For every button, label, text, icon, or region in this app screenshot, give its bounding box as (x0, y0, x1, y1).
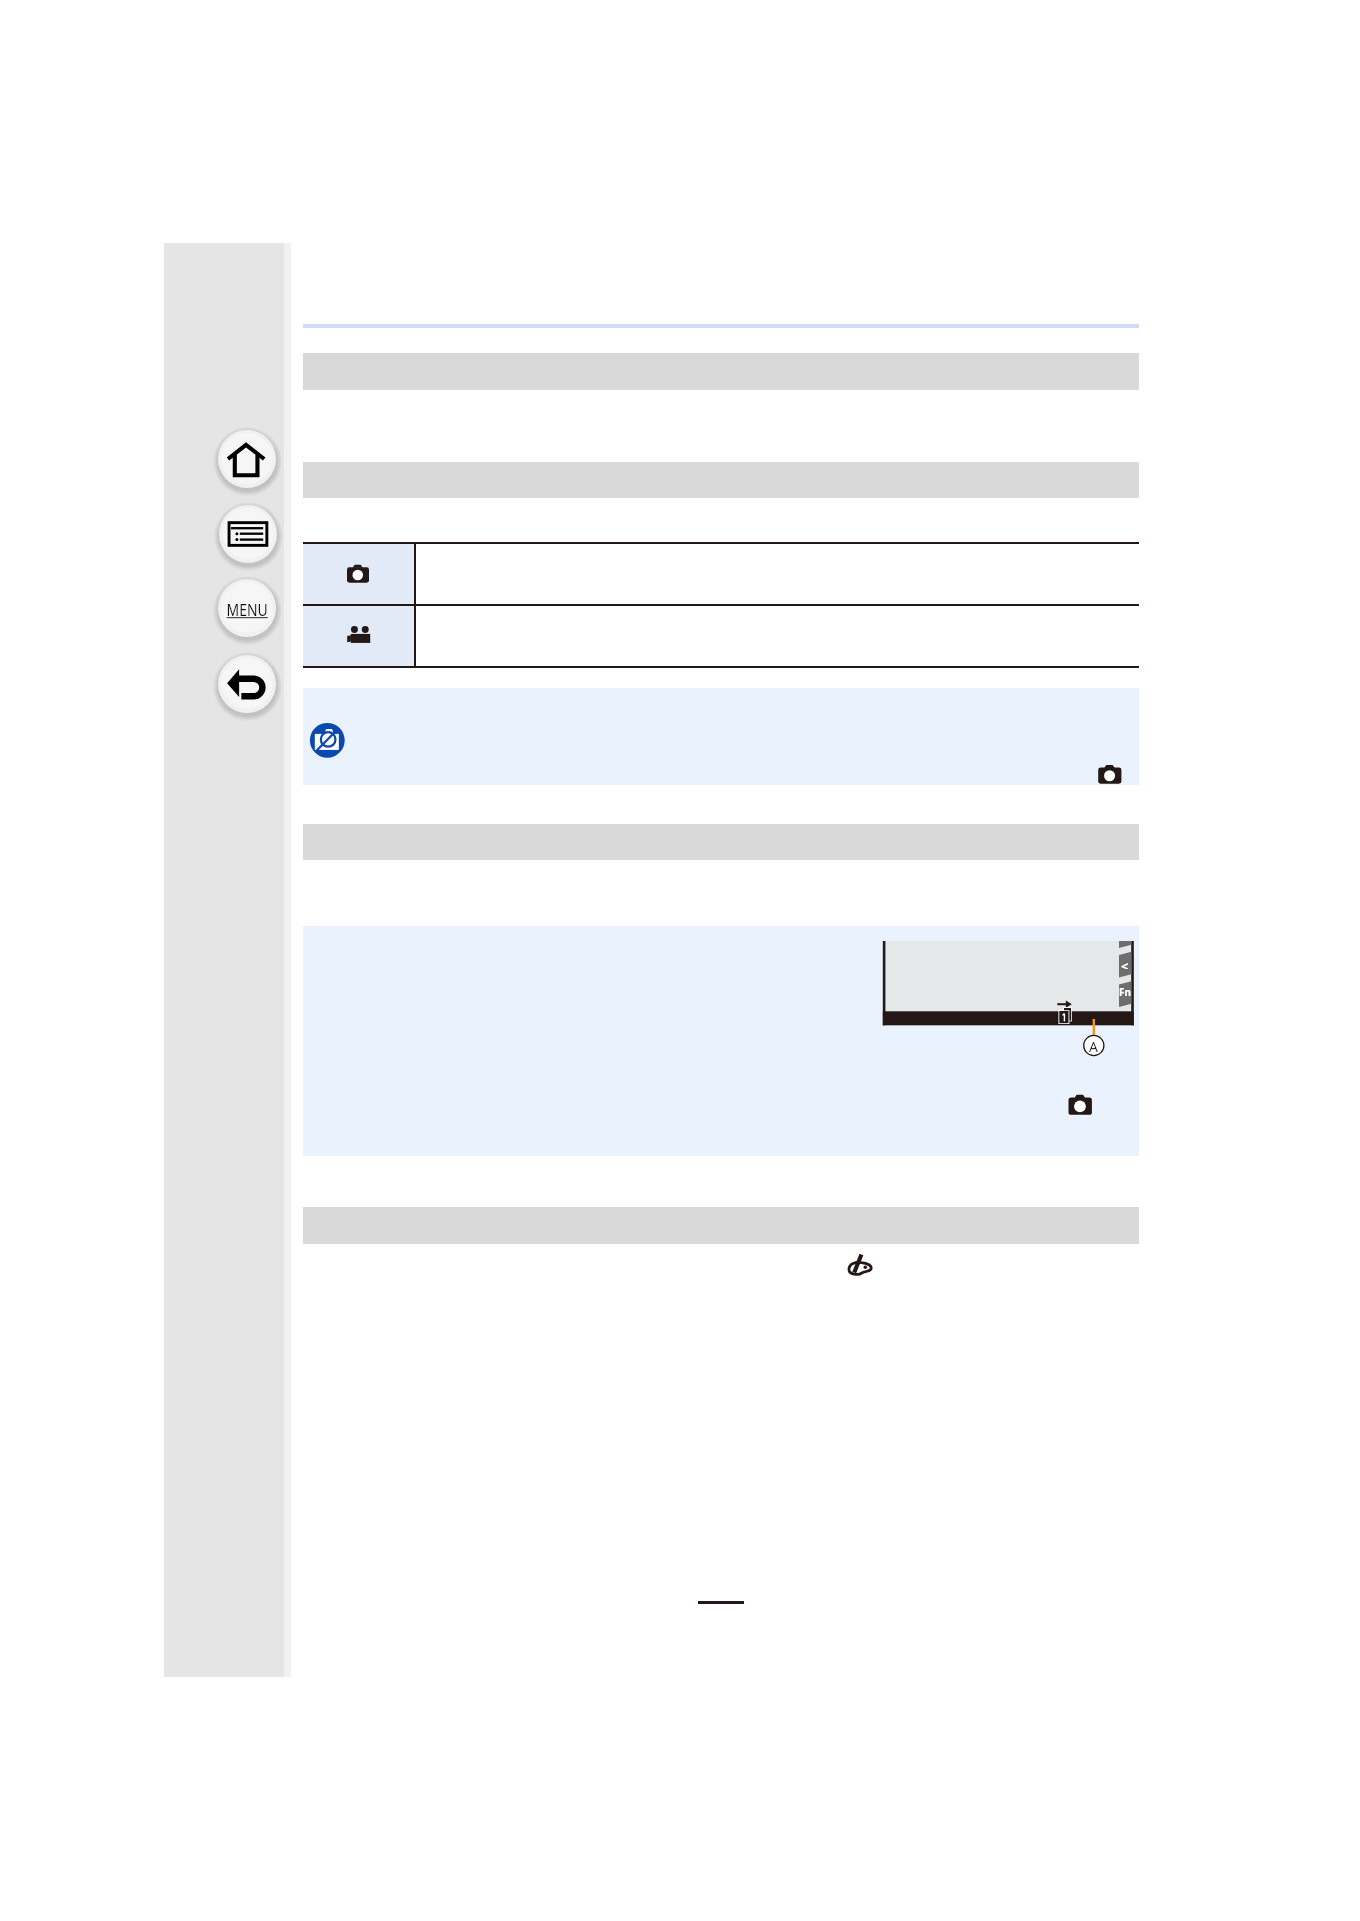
button[interactable]: Menu (212, 573, 282, 643)
button[interactable]: Home (212, 424, 282, 494)
button[interactable]: Contents (213, 499, 283, 569)
button[interactable]: Back (212, 649, 282, 719)
staticText: A (1089, 1037, 1098, 1056)
staticText: Fn (1119, 985, 1131, 998)
staticText: MENU (227, 598, 268, 621)
staticText: < (1121, 957, 1129, 969)
